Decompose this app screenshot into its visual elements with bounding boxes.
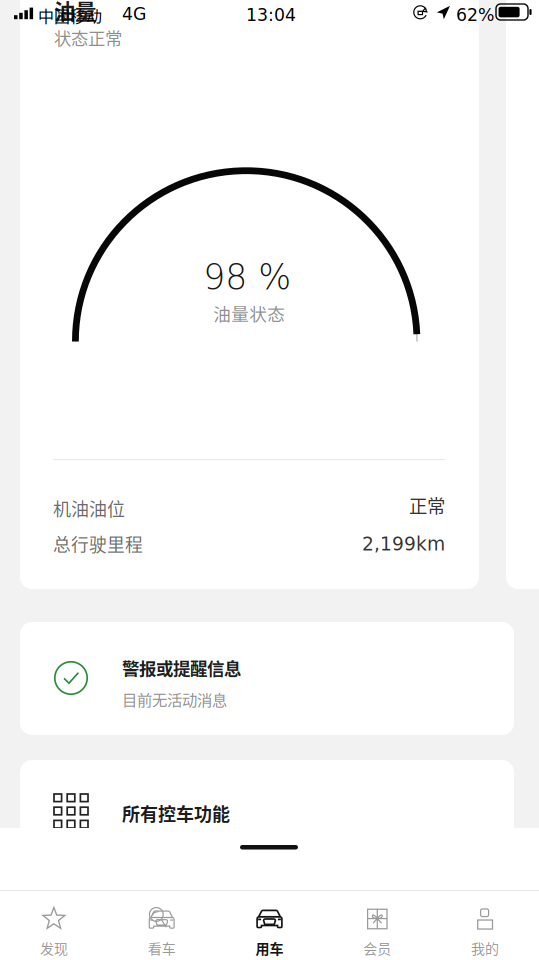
- staticText: 62%: [456, 5, 494, 25]
- staticText: 油量状态: [213, 300, 285, 326]
- button[interactable]: 用车: [216, 890, 323, 960]
- button[interactable]: 看车: [108, 890, 216, 960]
- button[interactable]: 我的: [431, 890, 539, 960]
- staticText: 用车: [255, 938, 283, 958]
- staticText: 4G: [122, 4, 146, 24]
- staticText: 98 %: [203, 257, 291, 297]
- button[interactable]: 发现: [0, 890, 108, 960]
- staticText: 状态正常: [54, 25, 122, 50]
- staticText: 正常: [409, 492, 445, 518]
- staticText: 中国移动: [38, 4, 102, 27]
- staticText: 会员: [363, 938, 391, 958]
- button[interactable]: 会员: [323, 890, 431, 960]
- staticText: 我的: [471, 938, 499, 958]
- staticText: 看车: [148, 938, 176, 958]
- staticText: 发现: [40, 938, 68, 958]
- staticText: 2,199km: [362, 533, 445, 555]
- staticText: 目前无活动消息: [122, 688, 227, 710]
- staticText: 机油油位: [53, 495, 125, 521]
- staticText: 油量: [54, 0, 96, 26]
- button[interactable]: 所有控车功能: [20, 760, 514, 870]
- staticText: 13:04: [246, 5, 296, 25]
- staticText: 总行驶里程: [53, 531, 143, 557]
- button[interactable]: 警报或提醒信息: [20, 622, 514, 735]
- staticText: 所有控车功能: [122, 800, 230, 826]
- staticText: 警报或提醒信息: [122, 655, 241, 680]
